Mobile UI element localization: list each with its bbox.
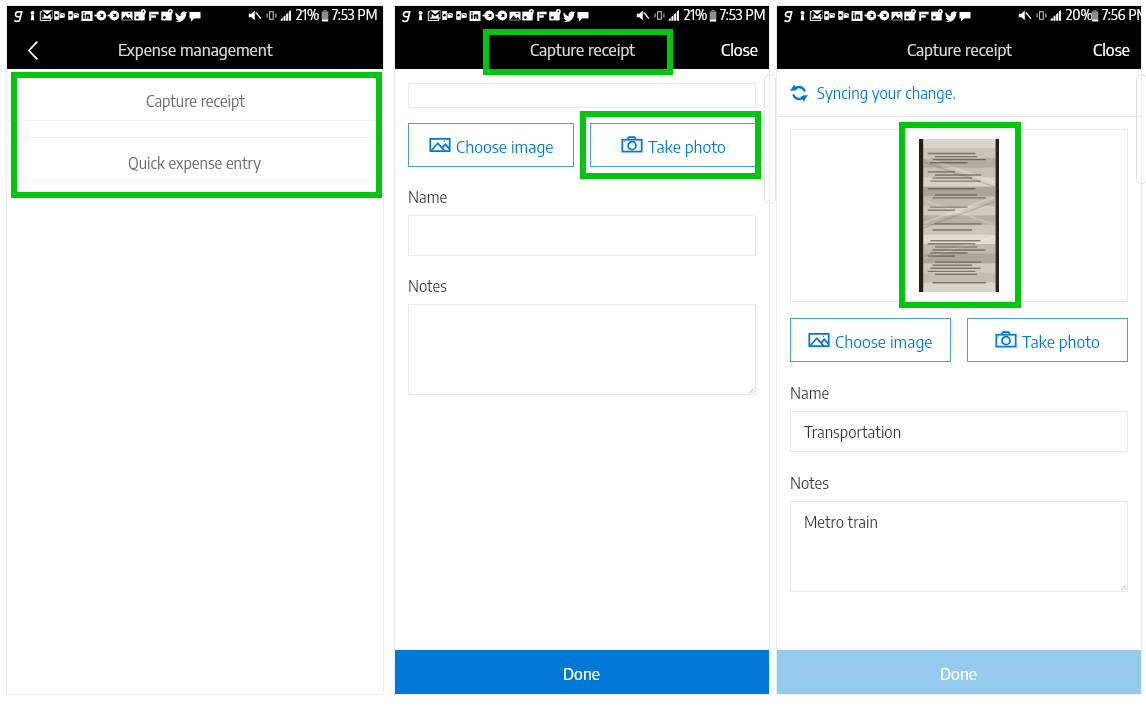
staticText: 7:53 PM: [332, 6, 378, 24]
staticText: Notes: [790, 473, 829, 493]
button[interactable]: Capture receipt: [6, 69, 384, 120]
staticText: Close: [721, 38, 758, 59]
staticText: Capture receipt: [146, 91, 245, 111]
staticText: 21%: [684, 6, 708, 24]
staticText: Done: [563, 662, 601, 683]
staticText: Metro train: [804, 512, 878, 532]
staticText: 20%: [1066, 6, 1093, 24]
staticText: 7:56 PM: [1102, 6, 1146, 24]
button[interactable]: Take photo: [967, 318, 1128, 362]
button[interactable]: Done: [394, 650, 770, 695]
staticText: Close: [1093, 38, 1130, 59]
staticText: Notes: [408, 276, 447, 296]
staticText: Expense management: [118, 38, 273, 59]
button[interactable]: Done: [776, 650, 1142, 695]
button[interactable]: Choose image: [790, 318, 951, 362]
button[interactable]: Close: [1093, 38, 1142, 69]
button[interactable]: Back: [6, 31, 60, 69]
staticText: Take photo: [648, 135, 726, 156]
staticText: Capture receipt: [907, 38, 1012, 59]
staticText: Syncing your change.: [817, 83, 956, 103]
staticText: Done: [940, 662, 978, 683]
staticText: Capture receipt: [530, 38, 635, 59]
staticText: Take photo: [1022, 330, 1100, 351]
staticText: Choose image: [835, 330, 933, 351]
staticText: Name: [408, 187, 448, 207]
button[interactable]: Take photo: [590, 123, 756, 167]
staticText: Name: [790, 383, 830, 403]
button[interactable]: Close: [721, 38, 770, 69]
staticText: Transportation: [804, 422, 902, 442]
staticText: 7:53 PM: [720, 6, 766, 24]
button[interactable]: Quick expense entry: [6, 138, 384, 180]
staticText: Choose image: [456, 135, 554, 156]
staticText: 21%: [296, 6, 320, 24]
staticText: Quick expense entry: [128, 153, 262, 173]
button[interactable]: Choose image: [408, 123, 574, 167]
